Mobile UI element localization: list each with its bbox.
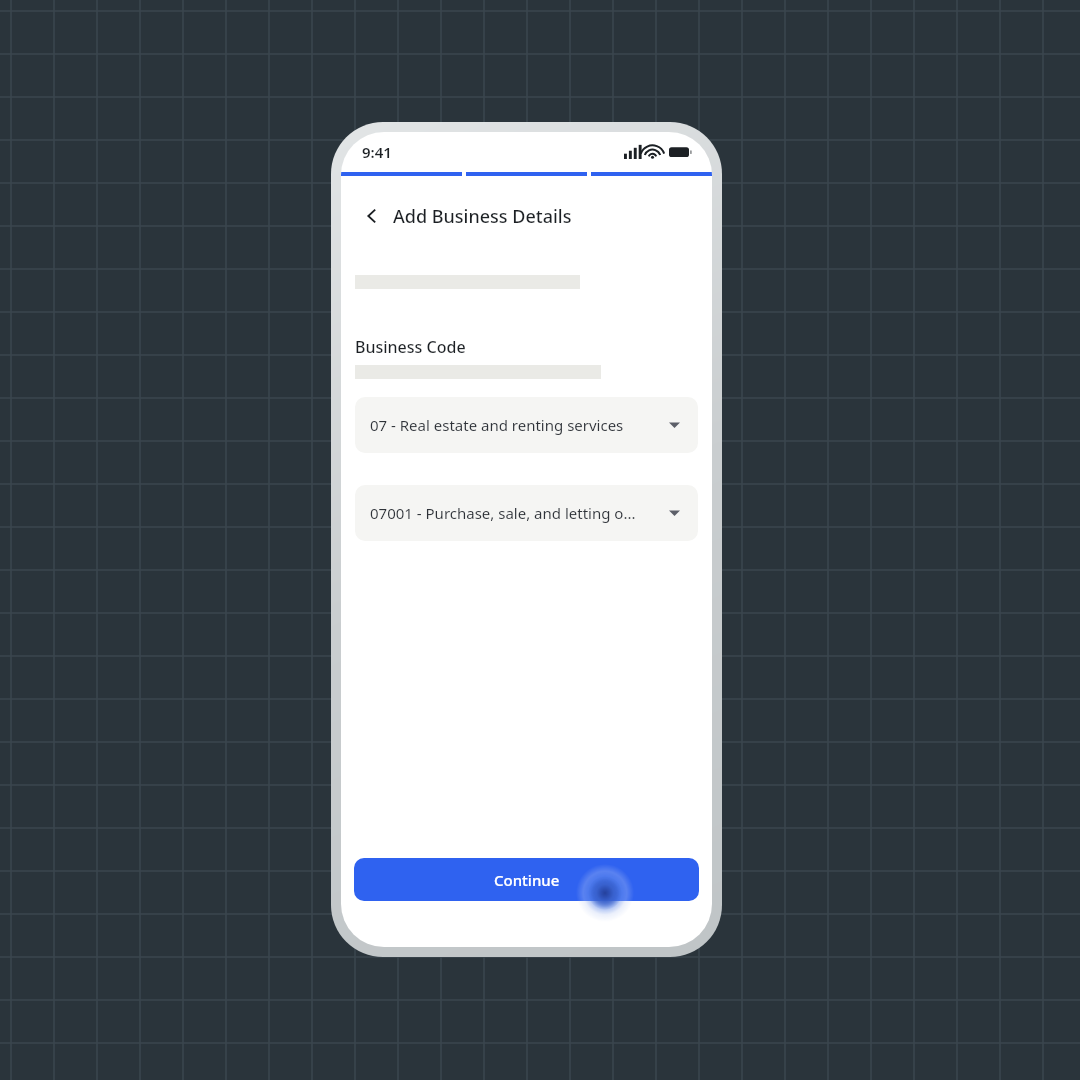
- staticText: Business Code: [355, 336, 466, 358]
- button[interactable]: 07 - Real estate and renting services: [355, 397, 698, 453]
- staticText: Add Business Details: [393, 204, 572, 229]
- button[interactable]: Continue: [354, 858, 699, 901]
- staticText: 07001 - Purchase, sale, and letting o...: [370, 503, 659, 523]
- staticText: Continue: [494, 870, 560, 890]
- button[interactable]: Back: [359, 203, 385, 229]
- staticText: 07 - Real estate and renting services: [370, 415, 659, 435]
- staticText: 9:41: [362, 142, 392, 162]
- button[interactable]: 07001 - Purchase, sale, and letting o...: [355, 485, 698, 541]
